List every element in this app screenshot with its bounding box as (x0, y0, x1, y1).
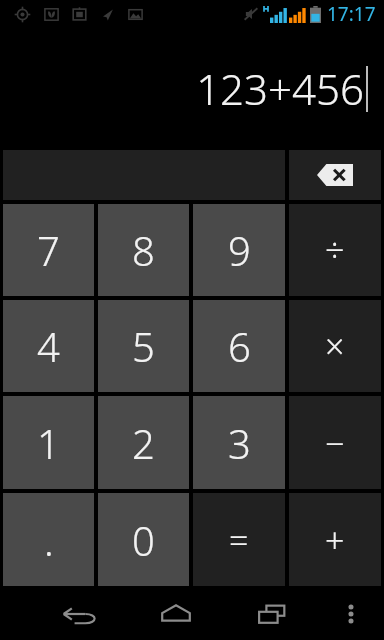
button[interactable]: Back (52, 588, 108, 640)
button[interactable]: 8 (98, 204, 189, 296)
staticText: 5 (132, 319, 155, 373)
staticText: . (44, 513, 54, 567)
staticText: ÷ (325, 227, 345, 273)
button[interactable]: Delete (289, 150, 381, 200)
staticText: 8 (132, 223, 155, 277)
staticText: − (325, 420, 345, 466)
button[interactable]: . (3, 493, 94, 586)
staticText: 17:17 (327, 1, 376, 27)
staticText: = (229, 517, 249, 563)
staticText: 6 (228, 319, 251, 373)
button[interactable]: 4 (3, 300, 94, 392)
button[interactable]: More options (329, 592, 373, 636)
staticText: 3 (228, 416, 251, 470)
button[interactable]: − (289, 396, 381, 489)
staticText: 4 (37, 319, 60, 373)
staticText: × (325, 323, 345, 369)
staticText: 9 (228, 223, 251, 277)
button[interactable]: 0 (98, 493, 189, 586)
button[interactable]: 1 (3, 396, 94, 489)
staticText: 123+456 (196, 60, 364, 117)
button[interactable]: = (193, 493, 285, 586)
button[interactable]: 5 (98, 300, 189, 392)
button[interactable]: × (289, 300, 381, 392)
button[interactable]: 7 (3, 204, 94, 296)
staticText: 0 (132, 513, 155, 567)
button[interactable]: ÷ (289, 204, 381, 296)
staticText: 1 (37, 416, 60, 470)
button[interactable]: Recent apps (244, 588, 300, 640)
staticText: 7 (37, 223, 60, 277)
button[interactable]: 6 (193, 300, 285, 392)
button[interactable]: Home (148, 588, 204, 640)
button[interactable]: 9 (193, 204, 285, 296)
button[interactable]: + (289, 493, 381, 586)
staticText: + (325, 517, 345, 563)
button[interactable]: 3 (193, 396, 285, 489)
staticText: 2 (132, 416, 155, 470)
button[interactable]: 2 (98, 396, 189, 489)
